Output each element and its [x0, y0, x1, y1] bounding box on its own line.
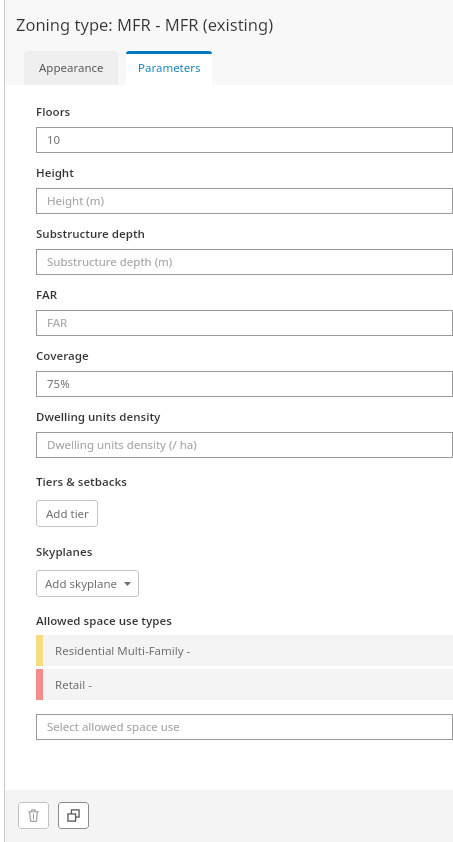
staticText: Add skyplane [45, 576, 118, 592]
button[interactable]: Add skyplane [36, 570, 139, 597]
button[interactable]: 75% [36, 371, 453, 397]
staticText: Add tier [46, 506, 89, 522]
staticText: Height (m) [47, 193, 104, 209]
staticText: Substructure depth (m) [47, 254, 173, 270]
button[interactable]: Delete [18, 802, 49, 829]
staticText: Coverage [36, 348, 89, 364]
button[interactable]: 10 [36, 127, 453, 153]
button[interactable]: Select allowed space use [36, 714, 453, 740]
staticText: Height [36, 165, 74, 181]
staticText: 75% [47, 376, 70, 392]
staticText: Allowed space use types [36, 613, 172, 629]
staticText: Residential Multi-Family - [55, 643, 191, 659]
staticText: Parameters [138, 60, 201, 76]
staticText: Select allowed space use [47, 719, 180, 735]
button[interactable]: Duplicate [58, 802, 89, 829]
staticText: FAR [47, 315, 68, 331]
button[interactable]: Dwelling units density (/ ha) [36, 432, 453, 458]
button[interactable]: Residential Multi-Family - [36, 635, 453, 666]
staticText: Substructure depth [36, 226, 145, 242]
staticText: Skyplanes [36, 544, 93, 560]
staticText: Appearance [39, 60, 104, 76]
staticText: Retail - [55, 677, 92, 693]
button[interactable]: Substructure depth (m) [36, 249, 453, 275]
button[interactable]: Parameters [126, 51, 212, 85]
staticText: Dwelling units density [36, 409, 161, 425]
button[interactable]: Retail - [36, 669, 453, 700]
staticText: Tiers & setbacks [36, 474, 127, 490]
button[interactable]: Add tier [36, 500, 98, 527]
button[interactable]: Appearance [24, 51, 118, 85]
staticText: Dwelling units density (/ ha) [47, 437, 197, 453]
staticText: 10 [47, 132, 61, 148]
staticText: FAR [36, 287, 58, 303]
staticText: Zoning type: MFR - MFR (existing) [16, 13, 274, 35]
button[interactable]: Height (m) [36, 188, 453, 214]
staticText: Floors [36, 104, 71, 120]
button[interactable]: FAR [36, 310, 453, 336]
